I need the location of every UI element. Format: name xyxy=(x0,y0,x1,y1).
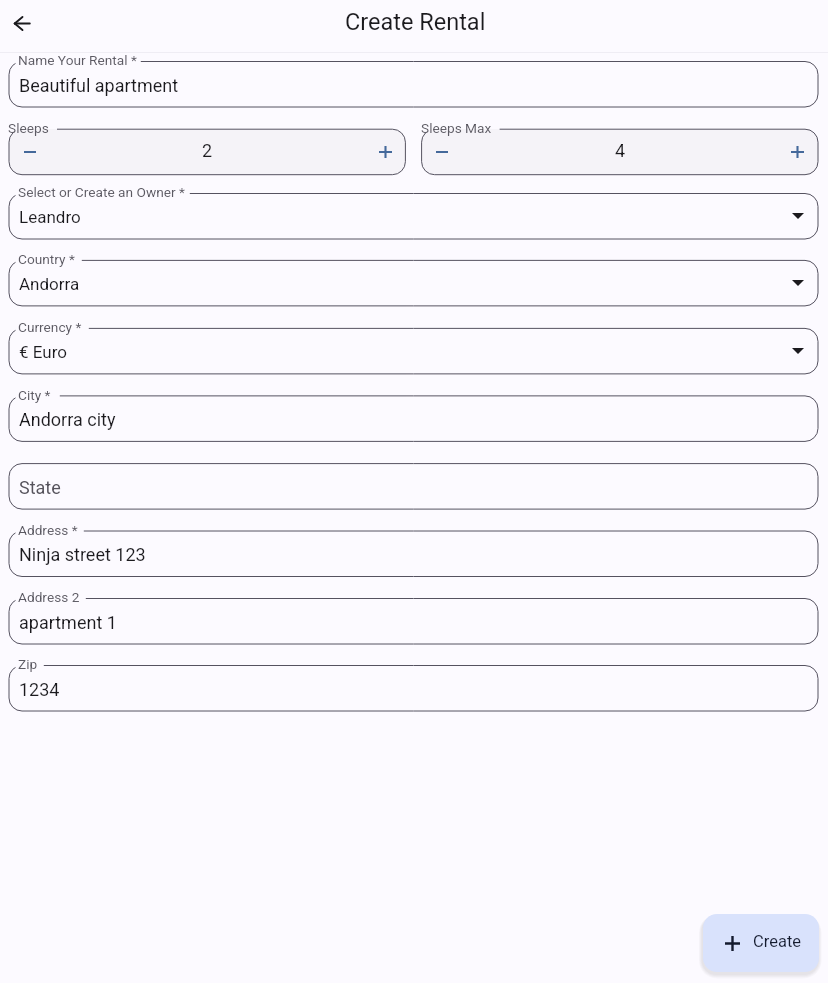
button[interactable] xyxy=(8,61,819,109)
button[interactable]: Decrease Sleeps Max xyxy=(420,130,464,174)
staticText: Select or Create an Owner * xyxy=(18,184,185,200)
staticText: Sleeps Max xyxy=(421,120,492,136)
button[interactable] xyxy=(422,129,818,175)
button[interactable]: Increase Sleeps Max xyxy=(775,130,819,174)
button[interactable] xyxy=(8,463,819,511)
staticText: € Euro xyxy=(19,342,67,362)
staticText: Ninja street 123 xyxy=(19,544,146,565)
staticText: Zip xyxy=(18,656,38,672)
staticText: Country * xyxy=(18,251,75,267)
staticText: Create Rental xyxy=(345,8,486,36)
staticText: Andorra xyxy=(19,274,80,294)
staticText: Create xyxy=(753,932,802,951)
button[interactable]: Create xyxy=(703,914,819,972)
staticText: City * xyxy=(18,387,51,403)
button[interactable]: Open dropdown xyxy=(783,336,813,366)
staticText: Currency * xyxy=(18,319,82,335)
staticText: 1234 xyxy=(19,679,60,700)
staticText: Beautiful apartment xyxy=(19,75,179,96)
staticText: Address 2 xyxy=(18,589,80,605)
button[interactable] xyxy=(8,665,819,713)
button[interactable] xyxy=(9,129,405,175)
button[interactable] xyxy=(8,327,819,375)
button[interactable]: Increase Sleeps xyxy=(363,130,407,174)
staticText: Andorra city xyxy=(19,409,116,430)
button[interactable] xyxy=(8,193,819,241)
button[interactable] xyxy=(8,259,819,307)
staticText: State xyxy=(19,477,61,498)
staticText: Sleeps xyxy=(8,120,49,136)
button[interactable] xyxy=(8,530,819,578)
button[interactable]: Open dropdown xyxy=(783,268,813,298)
staticText: apartment 1 xyxy=(19,612,117,633)
button[interactable]: Decrease Sleeps xyxy=(8,130,52,174)
staticText: 4 xyxy=(615,140,626,161)
button[interactable]: Open dropdown xyxy=(783,201,813,231)
button[interactable] xyxy=(8,598,819,646)
staticText: Leandro xyxy=(19,207,81,227)
button[interactable]: Back xyxy=(1,2,43,44)
staticText: 2 xyxy=(202,140,213,161)
button[interactable] xyxy=(8,395,819,443)
staticText: Name Your Rental * xyxy=(18,52,137,68)
staticText: Address * xyxy=(18,522,78,538)
